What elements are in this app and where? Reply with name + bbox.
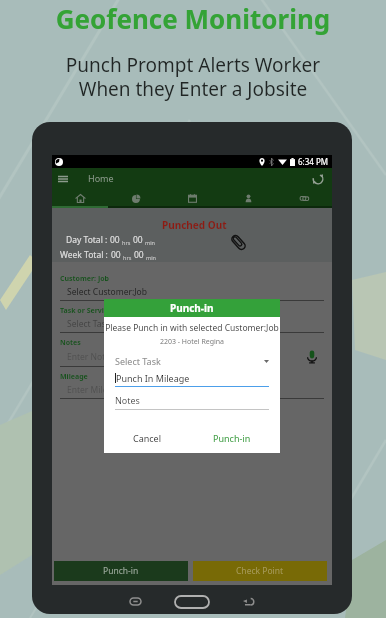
staticText: 00 bbox=[111, 249, 121, 261]
staticText: 00 bbox=[133, 234, 143, 246]
staticText: Punch In Mileage bbox=[116, 372, 190, 384]
staticText: hrs bbox=[122, 239, 131, 246]
staticText: Check Point bbox=[236, 565, 284, 577]
button[interactable]: Refresh bbox=[310, 171, 326, 187]
staticText: Notes bbox=[60, 338, 81, 348]
button[interactable]: Back bbox=[237, 590, 259, 612]
staticText: Week Total : bbox=[60, 249, 111, 261]
staticText: Mileage bbox=[60, 372, 88, 382]
staticText: Task or Service bbox=[60, 306, 112, 316]
staticText: Notes bbox=[115, 394, 140, 406]
staticText: 6:34 PM bbox=[298, 156, 329, 167]
staticText: Punch Prompt Alerts Worker When they Ent… bbox=[0, 52, 386, 101]
staticText: Punch-in bbox=[103, 565, 139, 577]
staticText: Day Total : bbox=[66, 234, 110, 246]
staticText: Enter Notes bbox=[67, 351, 115, 363]
staticText: min bbox=[145, 239, 155, 246]
button[interactable]: Check Point bbox=[193, 561, 327, 581]
staticText: Punch-in bbox=[213, 432, 251, 444]
button[interactable]: Cancel bbox=[133, 432, 162, 444]
staticText: 00 bbox=[134, 249, 144, 261]
button[interactable]: Punch-in bbox=[213, 432, 251, 444]
button[interactable]: Open navigation menu bbox=[55, 171, 71, 187]
button[interactable]: Jobs bbox=[276, 190, 332, 206]
staticText: min bbox=[146, 254, 156, 261]
button[interactable]: Calendar bbox=[164, 190, 220, 206]
staticText: Punch-in bbox=[170, 301, 214, 315]
staticText: Cancel bbox=[133, 432, 162, 444]
staticText: 00 bbox=[110, 234, 120, 246]
staticText: Please Punch in with selected Customer:J… bbox=[104, 322, 280, 334]
button[interactable]: Home bbox=[52, 190, 108, 206]
staticText: Enter Mileage bbox=[67, 384, 123, 396]
button[interactable]: Reports bbox=[108, 190, 164, 206]
button[interactable]: Punch-in bbox=[54, 561, 188, 581]
button[interactable]: Home bbox=[172, 592, 212, 612]
staticText: Select Task bbox=[115, 355, 161, 367]
staticText: Select Task bbox=[67, 318, 111, 330]
staticText: Punched Out bbox=[162, 218, 227, 232]
other: Voice input bbox=[306, 350, 318, 364]
button[interactable]: Recent apps bbox=[124, 590, 146, 612]
staticText: Geofence Monitoring bbox=[0, 1, 386, 36]
staticText: hrs bbox=[123, 254, 132, 261]
staticText: 2203 - Hotel Regina bbox=[104, 337, 280, 347]
button[interactable]: Profile bbox=[220, 190, 276, 206]
button[interactable]: Attach bbox=[228, 232, 248, 252]
staticText: Customer: Job bbox=[60, 274, 110, 284]
staticText: Select Customer:Job bbox=[67, 286, 147, 298]
staticText: Home bbox=[88, 172, 114, 184]
